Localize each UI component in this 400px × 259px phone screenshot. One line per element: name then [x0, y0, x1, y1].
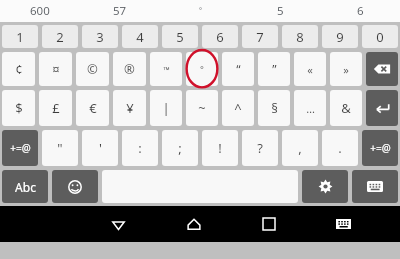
staticText: &: [341, 99, 351, 117]
button[interactable]: 8: [282, 25, 318, 48]
button[interactable]: !: [202, 130, 238, 166]
staticText: 2: [56, 28, 64, 46]
staticText: ,: [298, 139, 302, 157]
button[interactable]: ®: [113, 52, 146, 86]
staticText: …: [306, 101, 315, 116]
button[interactable]: 9: [322, 25, 358, 48]
button[interactable]: »: [330, 52, 362, 86]
staticText: 5: [277, 3, 284, 19]
staticText: §: [271, 99, 278, 117]
button[interactable]: ™: [150, 52, 182, 86]
staticText: ?: [257, 139, 263, 157]
staticText: ": [57, 139, 63, 157]
staticText: “: [236, 61, 241, 77]
button[interactable]: 6: [320, 0, 400, 22]
button[interactable]: Enter: [366, 90, 398, 126]
button[interactable]: |: [150, 90, 182, 126]
button[interactable]: 4: [122, 25, 158, 48]
button[interactable]: 6: [202, 25, 238, 48]
staticText: +=@: [10, 141, 31, 155]
staticText: ¢: [15, 60, 23, 78]
button[interactable]: &: [330, 90, 362, 126]
button[interactable]: °: [186, 52, 218, 86]
staticText: «: [307, 62, 313, 77]
button[interactable]: ?: [242, 130, 278, 166]
staticText: ™: [163, 64, 170, 75]
button[interactable]: €: [76, 90, 109, 126]
button[interactable]: ©: [76, 52, 109, 86]
button[interactable]: Settings: [302, 170, 348, 203]
button[interactable]: «: [294, 52, 326, 86]
button[interactable]: ”: [258, 52, 290, 86]
button[interactable]: 600: [0, 0, 80, 22]
staticText: ^: [234, 99, 242, 117]
button[interactable]: Home: [156, 206, 231, 242]
staticText: ;: [178, 139, 182, 157]
button[interactable]: 5: [240, 0, 320, 22]
button[interactable]: 1: [2, 25, 38, 48]
staticText: 4: [136, 28, 144, 46]
button[interactable]: +=@: [362, 130, 398, 166]
staticText: 8: [296, 28, 304, 46]
button[interactable]: Switch keyboard: [306, 206, 381, 242]
staticText: +=@: [370, 141, 391, 155]
button[interactable]: “: [222, 52, 254, 86]
staticText: £: [52, 99, 60, 117]
button[interactable]: ^: [222, 90, 254, 126]
button[interactable]: ': [82, 130, 118, 166]
button[interactable]: °: [160, 0, 240, 22]
button[interactable]: Emoji: [52, 170, 98, 203]
button[interactable]: ¥: [113, 90, 146, 126]
button[interactable]: 0: [362, 25, 398, 48]
button[interactable]: 2: [42, 25, 78, 48]
staticText: 1: [16, 28, 24, 46]
staticText: 9: [336, 28, 344, 46]
button[interactable]: Backspace: [366, 52, 398, 86]
button[interactable]: $: [2, 90, 35, 126]
staticText: 6: [357, 3, 364, 19]
staticText: ~: [198, 99, 206, 117]
button[interactable]: ¤: [39, 52, 72, 86]
button[interactable]: Abc: [2, 170, 48, 203]
button[interactable]: 5: [162, 25, 198, 48]
button[interactable]: §: [258, 90, 290, 126]
staticText: .: [338, 139, 342, 157]
staticText: °: [200, 63, 204, 75]
button[interactable]: ~: [186, 90, 218, 126]
staticText: »: [343, 62, 349, 77]
button[interactable]: .: [322, 130, 358, 166]
staticText: ©: [87, 60, 98, 78]
button[interactable]: ,: [282, 130, 318, 166]
button[interactable]: :: [122, 130, 158, 166]
staticText: |: [162, 99, 170, 117]
staticText: °: [199, 6, 202, 16]
button[interactable]: …: [294, 90, 326, 126]
staticText: 600: [30, 3, 50, 19]
staticText: ': [99, 139, 102, 157]
staticText: :: [138, 139, 142, 157]
button[interactable]: Back: [81, 206, 156, 242]
button[interactable]: Recents: [231, 206, 306, 242]
button[interactable]: Change keyboard: [352, 170, 398, 203]
staticText: 57: [113, 3, 127, 19]
staticText: 5: [176, 28, 184, 46]
button[interactable]: 57: [80, 0, 160, 22]
staticText: $: [15, 99, 23, 117]
staticText: 6: [216, 28, 224, 46]
staticText: !: [218, 139, 222, 157]
button[interactable]: ¢: [2, 52, 35, 86]
staticText: 0: [376, 28, 384, 46]
button[interactable]: +=@: [2, 130, 38, 166]
button[interactable]: ;: [162, 130, 198, 166]
staticText: ®: [124, 60, 135, 78]
button[interactable]: 3: [82, 25, 118, 48]
button[interactable]: 7: [242, 25, 278, 48]
staticText: 7: [256, 28, 264, 46]
button[interactable]: £: [39, 90, 72, 126]
staticText: 3: [96, 28, 104, 46]
staticText: Abc: [15, 179, 36, 195]
button[interactable]: ": [42, 130, 78, 166]
staticText: ”: [272, 61, 277, 77]
staticText: ¥: [126, 99, 134, 117]
